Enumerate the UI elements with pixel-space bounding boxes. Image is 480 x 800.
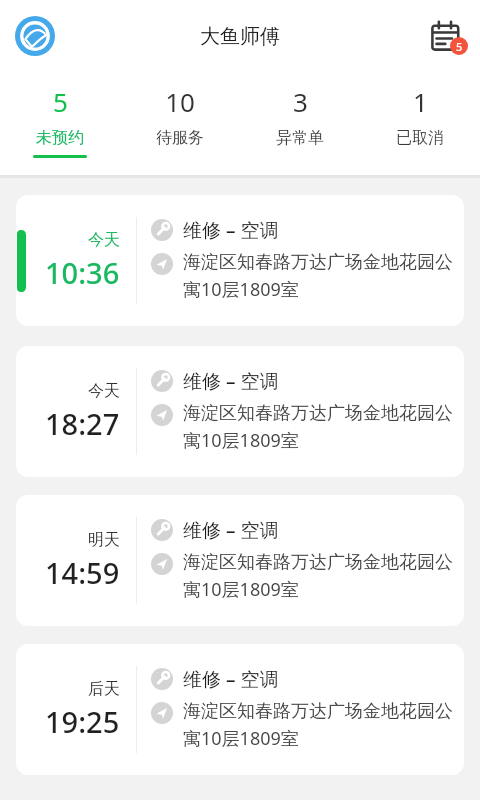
button[interactable]: 后天 [16,644,464,775]
button[interactable]: Calendar, 5 notifications [422,12,470,60]
staticText: 大鱼师傅 [200,24,280,49]
button[interactable]: 明天 [16,495,464,626]
staticText: 14:59 [45,553,120,592]
staticText: 明天 [88,530,120,550]
staticText: 待服务 [156,128,204,148]
staticText: 异常单 [276,128,324,148]
staticText: 后天 [88,679,120,699]
staticText: 海淀区知春路万达广场金地花园公寓10层1809室 [183,551,454,602]
staticText: 海淀区知春路万达广场金地花园公寓10层1809室 [183,251,454,302]
staticText: 维修 – 空调 [183,666,279,692]
staticText: 3 [293,84,308,119]
staticText: 已取消 [396,128,444,148]
staticText: 今天 [88,381,120,401]
staticText: 维修 – 空调 [183,517,279,543]
staticText: 5 [456,39,463,54]
button[interactable]: 3 [240,72,360,175]
button[interactable]: 今天 [16,195,464,326]
staticText: 未预约 [36,128,84,148]
staticText: 19:25 [45,702,120,741]
staticText: 10 [165,84,195,119]
button[interactable]: 5 [0,72,120,175]
button[interactable]: App logo [12,13,58,59]
staticText: 维修 – 空调 [183,368,279,394]
button[interactable]: 今天 [16,346,464,477]
staticText: 5 [53,84,68,119]
staticText: 维修 – 空调 [183,217,279,243]
staticText: 海淀区知春路万达广场金地花园公寓10层1809室 [183,402,454,453]
staticText: 1 [413,84,428,119]
staticText: 18:27 [45,404,120,443]
button[interactable]: 10 [120,72,240,175]
staticText: 10:36 [45,253,120,292]
staticText: 海淀区知春路万达广场金地花园公寓10层1809室 [183,700,454,751]
button[interactable]: 1 [360,72,480,175]
staticText: 今天 [88,230,120,250]
